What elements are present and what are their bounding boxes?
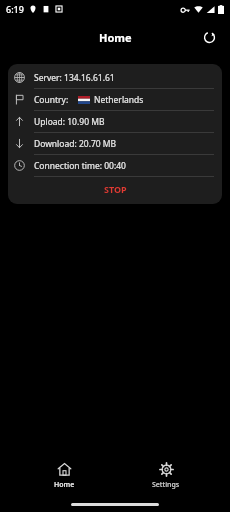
button[interactable]: Connection time: 00:40 — [8, 155, 222, 177]
button[interactable]: Settings — [129, 459, 203, 493]
staticText: 6:19 — [6, 3, 24, 15]
staticText: Netherlands — [94, 94, 144, 106]
staticText: STOP — [104, 183, 127, 195]
button[interactable]: Refresh — [196, 24, 222, 50]
button[interactable]: Home — [27, 459, 101, 493]
staticText: Upload: 10.90 MB — [34, 116, 105, 128]
button[interactable]: Upload: 10.90 MB — [8, 111, 222, 133]
staticText: Connection time: 00:40 — [34, 160, 126, 172]
staticText: Settings — [152, 480, 180, 490]
button[interactable]: STOP — [8, 177, 222, 201]
staticText: Home — [54, 480, 75, 490]
staticText: Download: 20.70 MB — [34, 138, 117, 150]
button[interactable]: Country: — [8, 89, 222, 111]
button[interactable]: Download: 20.70 MB — [8, 133, 222, 155]
staticText: Server: 134.16.61.61 — [34, 72, 115, 84]
button[interactable]: Server: 134.16.61.61 — [8, 67, 222, 89]
staticText: Country: — [34, 94, 69, 106]
staticText: Home — [99, 30, 132, 45]
